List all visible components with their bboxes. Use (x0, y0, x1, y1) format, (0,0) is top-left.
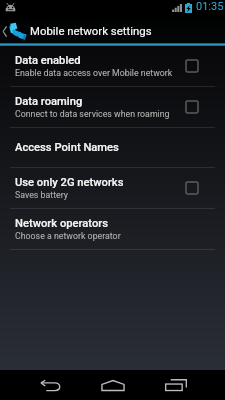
staticText: Choose a network operator (15, 231, 121, 241)
staticText: Saves battery (15, 190, 68, 200)
button[interactable]: Back (19, 370, 81, 400)
button[interactable]: Use only 2G networks (0, 168, 225, 208)
button[interactable]: Checkbox (185, 101, 198, 114)
staticText: Enable data access over Mobile network (15, 68, 173, 78)
button[interactable]: Recent apps (144, 370, 207, 400)
staticText: Connect to data services when roaming (15, 109, 170, 119)
staticText: Data enabled (15, 54, 81, 67)
button[interactable]: Data enabled (0, 46, 225, 86)
staticText: Network operators (15, 217, 108, 230)
button[interactable]: Access Point Names (0, 128, 225, 167)
staticText: Data roaming (15, 95, 83, 108)
button[interactable]: Checkbox (185, 60, 198, 73)
staticText: Use only 2G networks (15, 176, 124, 189)
staticText: Access Point Names (15, 141, 119, 154)
staticText: Mobile network settings (30, 24, 152, 37)
button[interactable]: Navigate up (0, 16, 29, 44)
button[interactable]: Data roaming (0, 87, 225, 127)
button[interactable]: Home (81, 370, 144, 400)
button[interactable]: Network operators (0, 209, 225, 249)
button[interactable]: Checkbox (185, 182, 198, 195)
staticText: 01:35 (196, 0, 224, 13)
